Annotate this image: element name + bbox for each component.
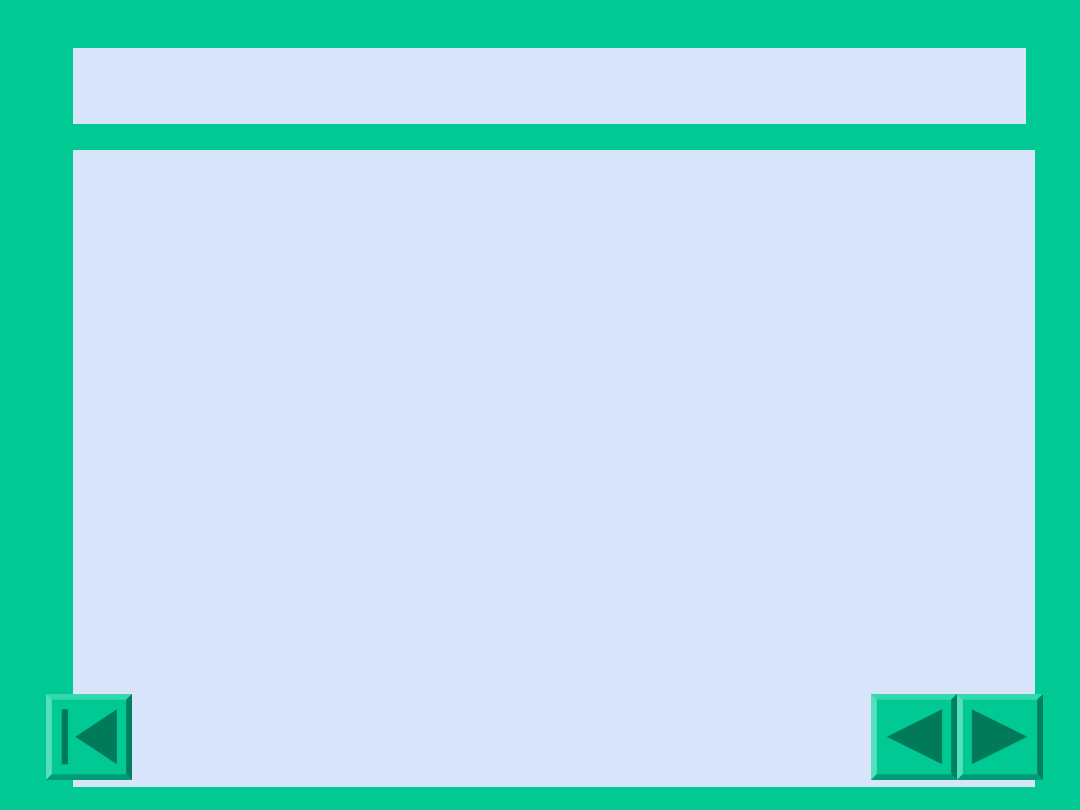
button[interactable]: First slide [46,694,132,780]
button[interactable]: Previous slide [871,694,957,780]
button[interactable]: Next slide [957,694,1043,780]
button[interactable] [73,150,1035,787]
